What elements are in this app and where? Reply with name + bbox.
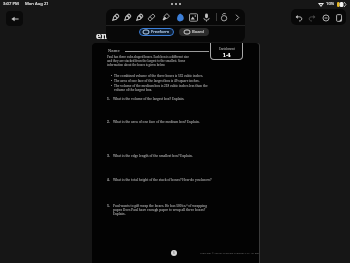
button[interactable]: Highlighter <box>160 12 171 23</box>
button[interactable]: Freeform <box>139 28 174 36</box>
button[interactable]: Pen <box>122 12 133 23</box>
button[interactable]: Board <box>179 28 209 36</box>
staticText: Board <box>192 29 204 35</box>
button[interactable]: Undo <box>293 12 304 23</box>
staticText: Paul wants to gift wrap the boxes. He ha… <box>113 204 210 216</box>
button[interactable]: Pages <box>333 12 344 23</box>
button[interactable]: Insert image <box>188 12 199 23</box>
staticText: Enrichment <box>219 47 235 51</box>
staticText: Copyright © Savvas Learning Company LLC.… <box>200 251 259 254</box>
staticText: Name <box>108 48 120 54</box>
button[interactable]: Pen <box>134 12 145 23</box>
staticText: 10% <box>326 1 335 7</box>
button[interactable]: Eraser <box>146 12 157 23</box>
button[interactable]: More <box>232 12 243 23</box>
staticText: 3:07 PM <box>3 1 19 7</box>
staticText: The volume of the medium box is 218 cubi… <box>114 84 219 92</box>
button[interactable]: Pen <box>110 12 121 23</box>
staticText: 1-4 <box>223 51 231 58</box>
staticText: What is the edge length of the smallest … <box>113 154 193 158</box>
button[interactable]: Redo <box>306 12 317 23</box>
staticText: Freeform <box>151 29 170 35</box>
button[interactable]: Zoom out <box>320 12 331 23</box>
staticText: The area of one face of the largest box … <box>114 79 200 83</box>
staticText: Paul has three cube-shaped boxes. Each b… <box>107 55 189 67</box>
button[interactable]: Ink colour <box>175 12 186 23</box>
button[interactable]: Record audio <box>201 12 212 23</box>
button[interactable]: Back <box>6 11 23 26</box>
staticText: 5. <box>107 204 110 208</box>
staticText: 2. <box>107 120 110 124</box>
staticText: 3. <box>107 154 110 158</box>
staticText: 1. <box>107 97 110 101</box>
staticText: en <box>96 29 108 41</box>
button[interactable]: Shapes <box>219 12 230 23</box>
staticText: S <box>173 251 175 255</box>
staticText: 4. <box>107 178 110 182</box>
staticText: What is the area of one face of the medi… <box>113 120 200 124</box>
staticText: The combined volume of the three boxes i… <box>114 74 204 78</box>
staticText: What is the volume of the largest box? E… <box>113 97 185 101</box>
staticText: Mon Aug 21 <box>25 1 49 7</box>
staticText: What is the total height of the stack of… <box>113 178 212 182</box>
